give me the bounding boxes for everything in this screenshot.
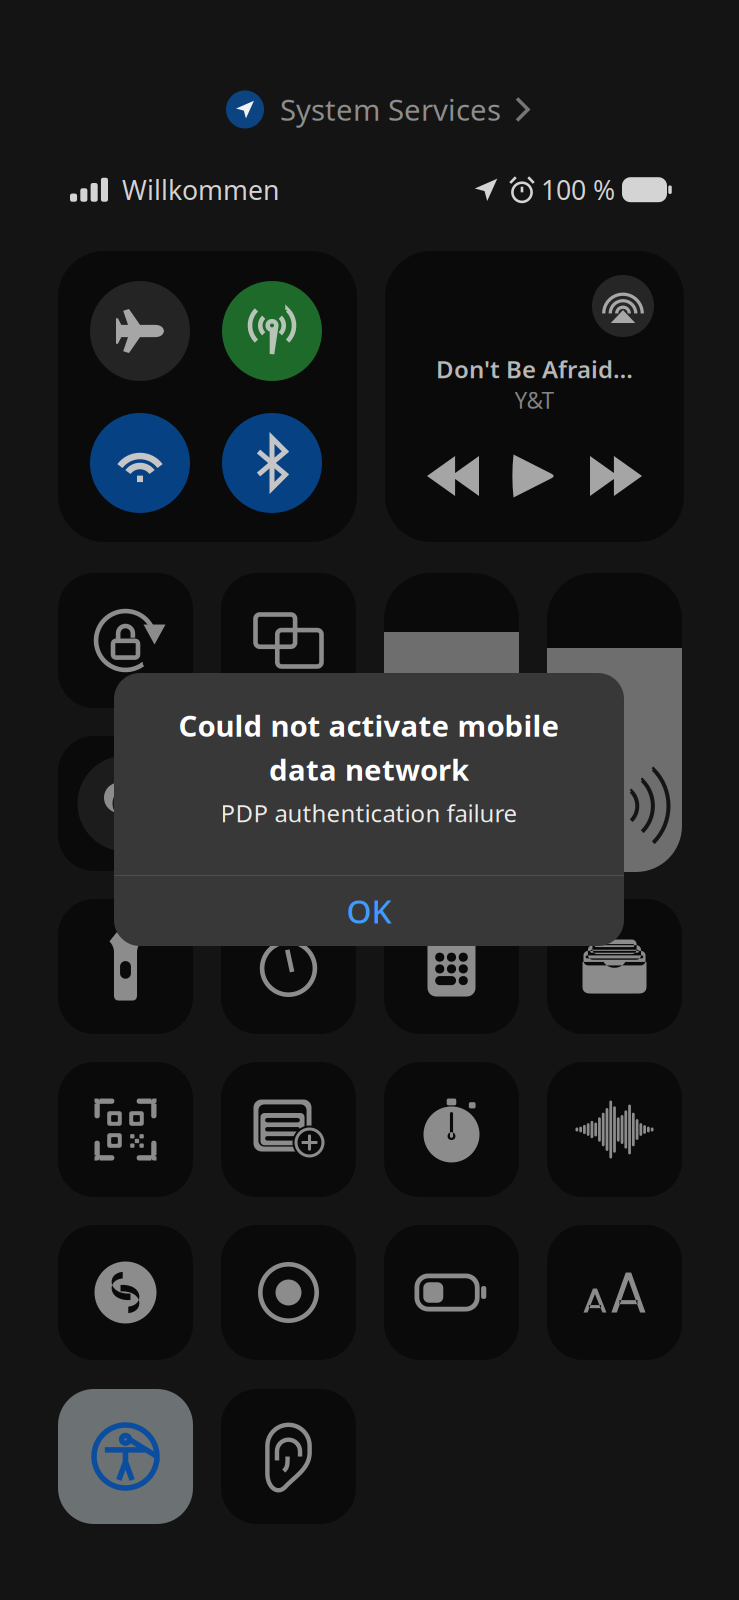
button[interactable]: Airplane Mode (90, 281, 190, 381)
staticText: 100 % (534, 172, 622, 207)
button[interactable]: Voice Memo (547, 1062, 682, 1197)
button[interactable]: Personal Hotspot (221, 736, 356, 871)
button[interactable]: Screen Mirroring (221, 573, 356, 708)
button[interactable]: Next (590, 456, 642, 496)
staticText: Willkommen (108, 172, 279, 207)
staticText: Could not activate mobile (178, 706, 559, 745)
staticText: Don't Be Afraid… (436, 353, 633, 385)
button[interactable]: Flashlight (58, 899, 193, 1034)
button[interactable]: Accessibility Shortcuts (58, 1389, 193, 1524)
button[interactable]: Focus (58, 736, 193, 871)
staticText: OK (346, 890, 391, 932)
staticText: PDP authentication failure (220, 797, 517, 829)
button[interactable]: Quick Note (221, 1062, 356, 1197)
button[interactable]: Play (513, 451, 555, 501)
staticText: System Services (264, 90, 517, 129)
button[interactable]: Low Power Mode (384, 1225, 519, 1360)
button[interactable]: Volume (547, 573, 682, 872)
button[interactable]: Bluetooth (222, 413, 322, 513)
button[interactable]: Calculator (384, 899, 519, 1034)
button[interactable]: Cellular Data (222, 281, 322, 381)
button[interactable]: OK (114, 876, 624, 946)
staticText: Y&T (514, 385, 554, 415)
button[interactable]: Rotation Lock (58, 573, 193, 708)
button[interactable]: Screen Recording (221, 1225, 356, 1360)
button[interactable]: Wallet (547, 899, 682, 1034)
staticText: data network (269, 750, 469, 789)
button[interactable]: Hearing (221, 1389, 356, 1524)
button[interactable]: System Services (220, 86, 534, 133)
button[interactable]: Brightness (384, 573, 519, 872)
button[interactable]: Stopwatch (384, 1062, 519, 1197)
button[interactable]: Scan QR Code (58, 1062, 193, 1197)
button[interactable]: Timer (221, 899, 356, 1034)
button[interactable]: Previous (427, 456, 479, 496)
button[interactable]: Wi-Fi (90, 413, 190, 513)
button[interactable]: AirPlay (592, 275, 654, 337)
button[interactable]: Text Size (547, 1225, 682, 1360)
button[interactable]: Music Recognition (58, 1225, 193, 1360)
